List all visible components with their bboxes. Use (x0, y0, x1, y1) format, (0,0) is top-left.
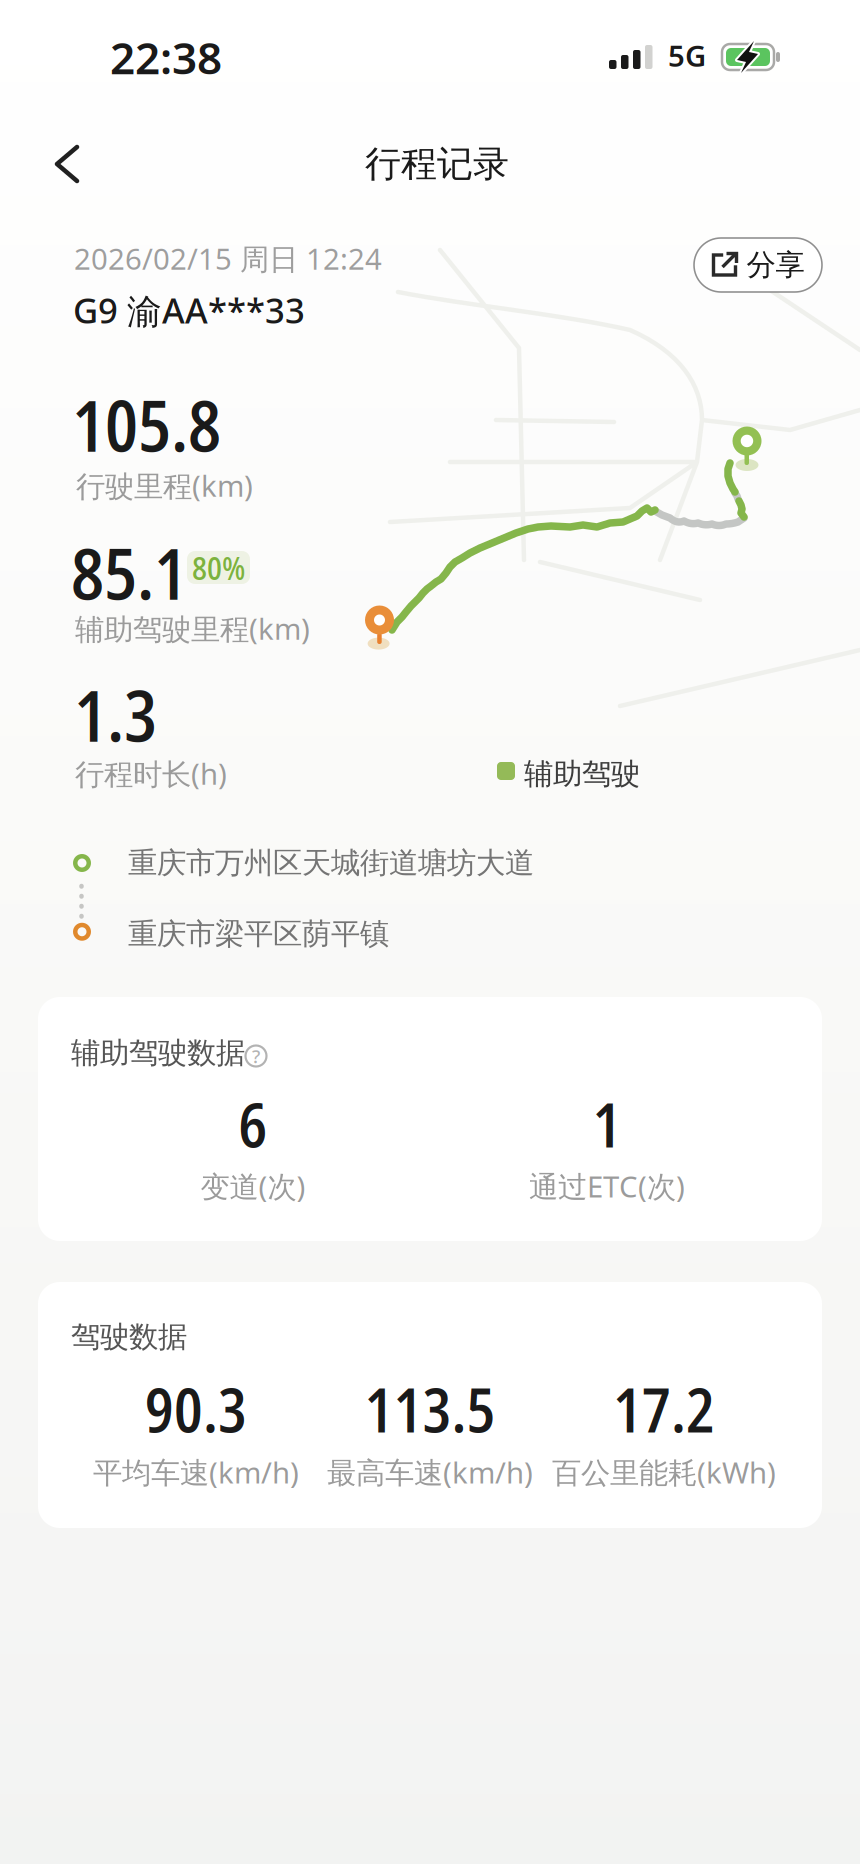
staticText: 辅助驾驶 (524, 756, 640, 792)
staticText: G9 渝AA***33 (73, 287, 305, 333)
staticText: 5G (668, 36, 706, 75)
staticText: 90.3 (145, 1368, 247, 1450)
button[interactable]: Back (53, 144, 81, 184)
staticText: 行程时长(h) (75, 754, 227, 793)
staticText: 113.5 (364, 1368, 495, 1450)
staticText: 6 (238, 1083, 267, 1165)
staticText: 最高车速(km/h) (327, 1452, 533, 1491)
staticText: 1 (592, 1083, 621, 1165)
button[interactable]: Help (245, 1045, 267, 1067)
staticText: 80% (192, 546, 245, 589)
staticText: ? (252, 1044, 260, 1068)
staticText: 分享 (746, 247, 804, 283)
staticText: 22:38 (110, 28, 222, 86)
staticText: 通过ETC(次) (529, 1166, 685, 1205)
staticText: 驾驶数据 (71, 1319, 187, 1355)
staticText: 重庆市梁平区荫平镇 (128, 916, 389, 952)
staticText: 平均车速(km/h) (93, 1452, 299, 1491)
staticText: 重庆市万州区天城街道塘坊大道 (128, 845, 534, 881)
staticText: 行驶里程(km) (76, 466, 253, 505)
staticText: 105.8 (72, 377, 221, 472)
staticText: 变道(次) (200, 1166, 305, 1205)
staticText: 85.1 (71, 525, 187, 620)
staticText: 17.2 (613, 1368, 715, 1450)
staticText: 辅助驾驶数据 (71, 1035, 245, 1071)
staticText: 辅助驾驶里程(km) (75, 609, 310, 648)
staticText: 百公里能耗(kWh) (552, 1452, 776, 1491)
staticText: 行程记录 (365, 142, 509, 186)
staticText: 1.3 (74, 667, 157, 762)
staticText: 2026/02/15 周日 12:24 (74, 239, 382, 278)
button[interactable]: 分享 (694, 238, 822, 292)
